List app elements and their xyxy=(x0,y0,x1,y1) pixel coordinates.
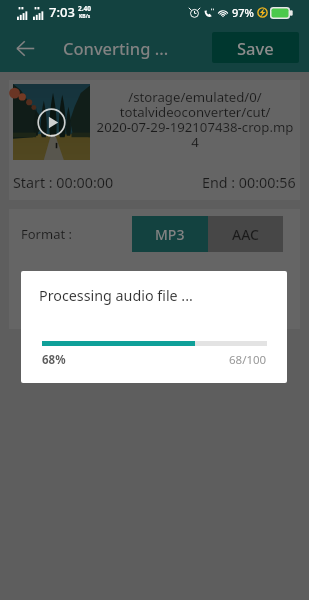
staticText: Processing audio file ... xyxy=(39,286,193,305)
staticText: MP3 xyxy=(155,225,185,244)
staticText: Save xyxy=(237,37,274,59)
staticText: Format : xyxy=(21,225,72,243)
button[interactable]: Back xyxy=(8,31,42,65)
staticText: /storage/emulated/0/ totalvideoconverter… xyxy=(90,88,300,151)
button[interactable]: Bitrate option xyxy=(119,277,139,297)
staticText: AAC xyxy=(232,225,259,244)
staticText: Converting ... xyxy=(63,37,169,59)
staticText: End : 00:00:56 xyxy=(202,173,296,192)
staticText: 68/100 xyxy=(229,352,267,368)
staticText: KB/s xyxy=(79,13,91,20)
staticText: 97% xyxy=(232,5,254,20)
button[interactable]: Save xyxy=(212,32,299,63)
staticText: 2.40 xyxy=(78,4,91,13)
button[interactable]: MP3 xyxy=(132,216,208,252)
staticText: Start : 00:00:00 xyxy=(13,173,114,192)
staticText: 68% xyxy=(42,352,66,368)
staticText: 7:03 xyxy=(49,3,75,21)
button[interactable]: AAC xyxy=(208,216,283,252)
